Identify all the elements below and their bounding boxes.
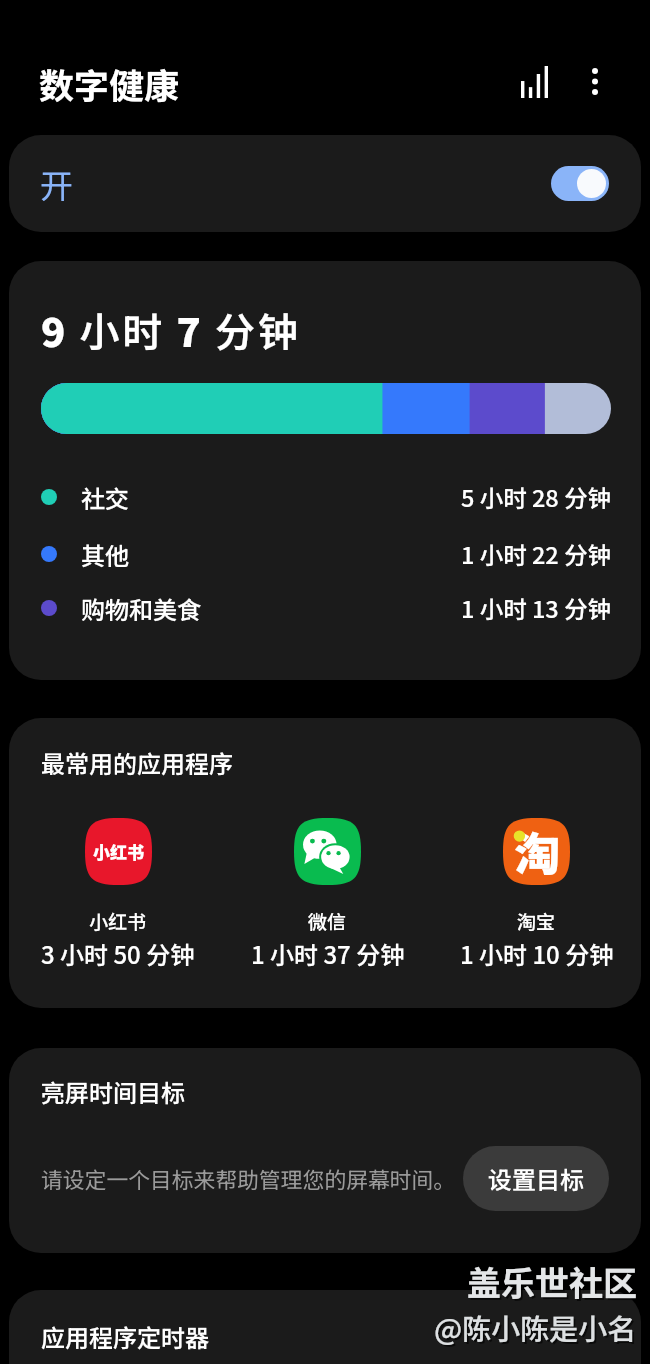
button[interactable]: 微信 bbox=[223, 818, 432, 971]
staticText: 1 小时 22 分钟 bbox=[461, 537, 611, 570]
staticText: 数字健康 bbox=[39, 58, 180, 109]
staticText: 请设定一个目标来帮助管理您的屏幕时间。 bbox=[41, 1163, 463, 1195]
staticText: 设置目标 bbox=[488, 1161, 584, 1196]
staticText: @陈小陈是小名 bbox=[434, 1306, 637, 1348]
staticText: 9 小时 7 分钟 bbox=[41, 301, 301, 359]
staticText: 小红书 bbox=[93, 839, 144, 864]
staticText: 开 bbox=[40, 160, 73, 208]
button[interactable]: 其他 bbox=[41, 537, 611, 570]
button[interactable]: 小红书 bbox=[13, 818, 223, 971]
staticText: 购物和美食 bbox=[81, 591, 201, 624]
staticText: 最常用的应用程序 bbox=[41, 745, 233, 780]
staticText: 1 小时 13 分钟 bbox=[461, 591, 611, 624]
staticText: 淘 bbox=[514, 818, 560, 885]
staticText: 淘宝 bbox=[517, 907, 556, 935]
button[interactable]: More options bbox=[566, 53, 623, 110]
staticText: 3 小时 50 分钟 bbox=[41, 936, 195, 971]
staticText: 其他 bbox=[81, 537, 129, 570]
button[interactable]: Usage statistics bbox=[506, 53, 563, 110]
staticText: 5 小时 28 分钟 bbox=[461, 480, 611, 513]
button[interactable]: 淘 bbox=[432, 818, 641, 971]
staticText: 1 小时 10 分钟 bbox=[460, 936, 614, 971]
staticText: 1 小时 37 分钟 bbox=[251, 936, 405, 971]
staticText: 盖乐世社区 bbox=[469, 1259, 639, 1308]
staticText: 微信 bbox=[308, 907, 347, 935]
staticText: 小红书 bbox=[89, 907, 147, 935]
staticText: 亮屏时间目标 bbox=[41, 1074, 185, 1109]
staticText: @陈小陈是小名 bbox=[436, 1308, 639, 1350]
button[interactable]: 应用程序定时器 bbox=[9, 1290, 641, 1364]
staticText: 盖乐世社区 bbox=[467, 1257, 637, 1306]
button[interactable]: 社交 bbox=[41, 480, 611, 513]
staticText: 应用程序定时器 bbox=[41, 1319, 209, 1354]
button[interactable]: 购物和美食 bbox=[41, 591, 611, 624]
button[interactable]: 开 bbox=[9, 135, 641, 232]
staticText: 社交 bbox=[81, 480, 129, 513]
button[interactable]: 设置目标 bbox=[463, 1146, 609, 1211]
